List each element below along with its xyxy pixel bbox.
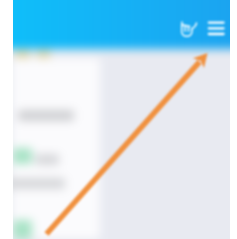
button[interactable]: Menu [204,14,229,40]
button[interactable]: Gestures [179,20,198,39]
